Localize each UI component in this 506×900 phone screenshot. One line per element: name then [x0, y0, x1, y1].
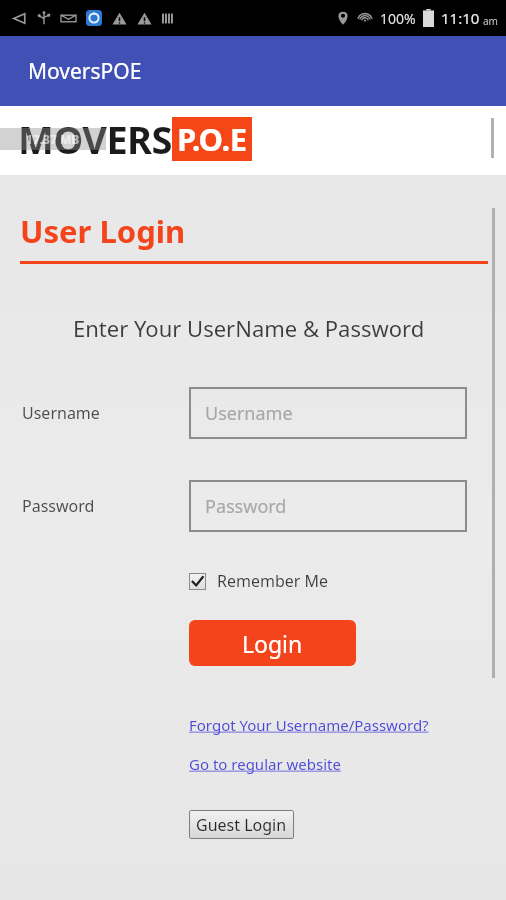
staticText: Password	[205, 494, 287, 519]
staticText: Remember Me	[217, 570, 329, 592]
button[interactable]: Login	[189, 620, 356, 666]
staticText: Username	[22, 402, 189, 424]
button[interactable]: Remember Me	[189, 570, 329, 592]
staticText: User Login	[20, 210, 186, 252]
staticText: P.O.E	[177, 118, 247, 160]
button[interactable]: Password	[189, 480, 467, 532]
staticText: MoversPOE	[28, 57, 142, 86]
staticText: Password	[22, 495, 189, 517]
staticText: Enter Your UserName & Password	[73, 313, 425, 343]
staticText: Guest Login	[196, 814, 287, 836]
button[interactable]: Username	[189, 387, 467, 439]
staticText: Username	[205, 401, 293, 426]
staticText: MOVERS	[18, 113, 172, 165]
staticText: Login	[242, 628, 303, 659]
button[interactable]: Guest Login	[189, 810, 294, 839]
staticText: am	[483, 14, 498, 28]
staticText: 11:10	[441, 8, 480, 28]
staticText: Forgot Your Username/Password?	[189, 715, 429, 735]
staticText: Go to regular website	[189, 754, 341, 774]
button[interactable]: Forgot Your Username/Password?	[189, 715, 429, 735]
staticText: 100%	[380, 9, 416, 28]
button[interactable]: Go to regular website	[189, 754, 341, 774]
staticText: 17.37 MB	[26, 131, 80, 147]
